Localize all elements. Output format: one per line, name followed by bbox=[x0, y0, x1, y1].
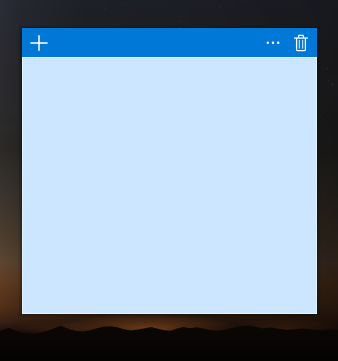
button[interactable]: Delete note bbox=[287, 28, 315, 57]
button[interactable]: New note bbox=[22, 28, 55, 57]
button[interactable]: More options bbox=[258, 28, 287, 57]
button[interactable]: New note bbox=[22, 28, 317, 57]
